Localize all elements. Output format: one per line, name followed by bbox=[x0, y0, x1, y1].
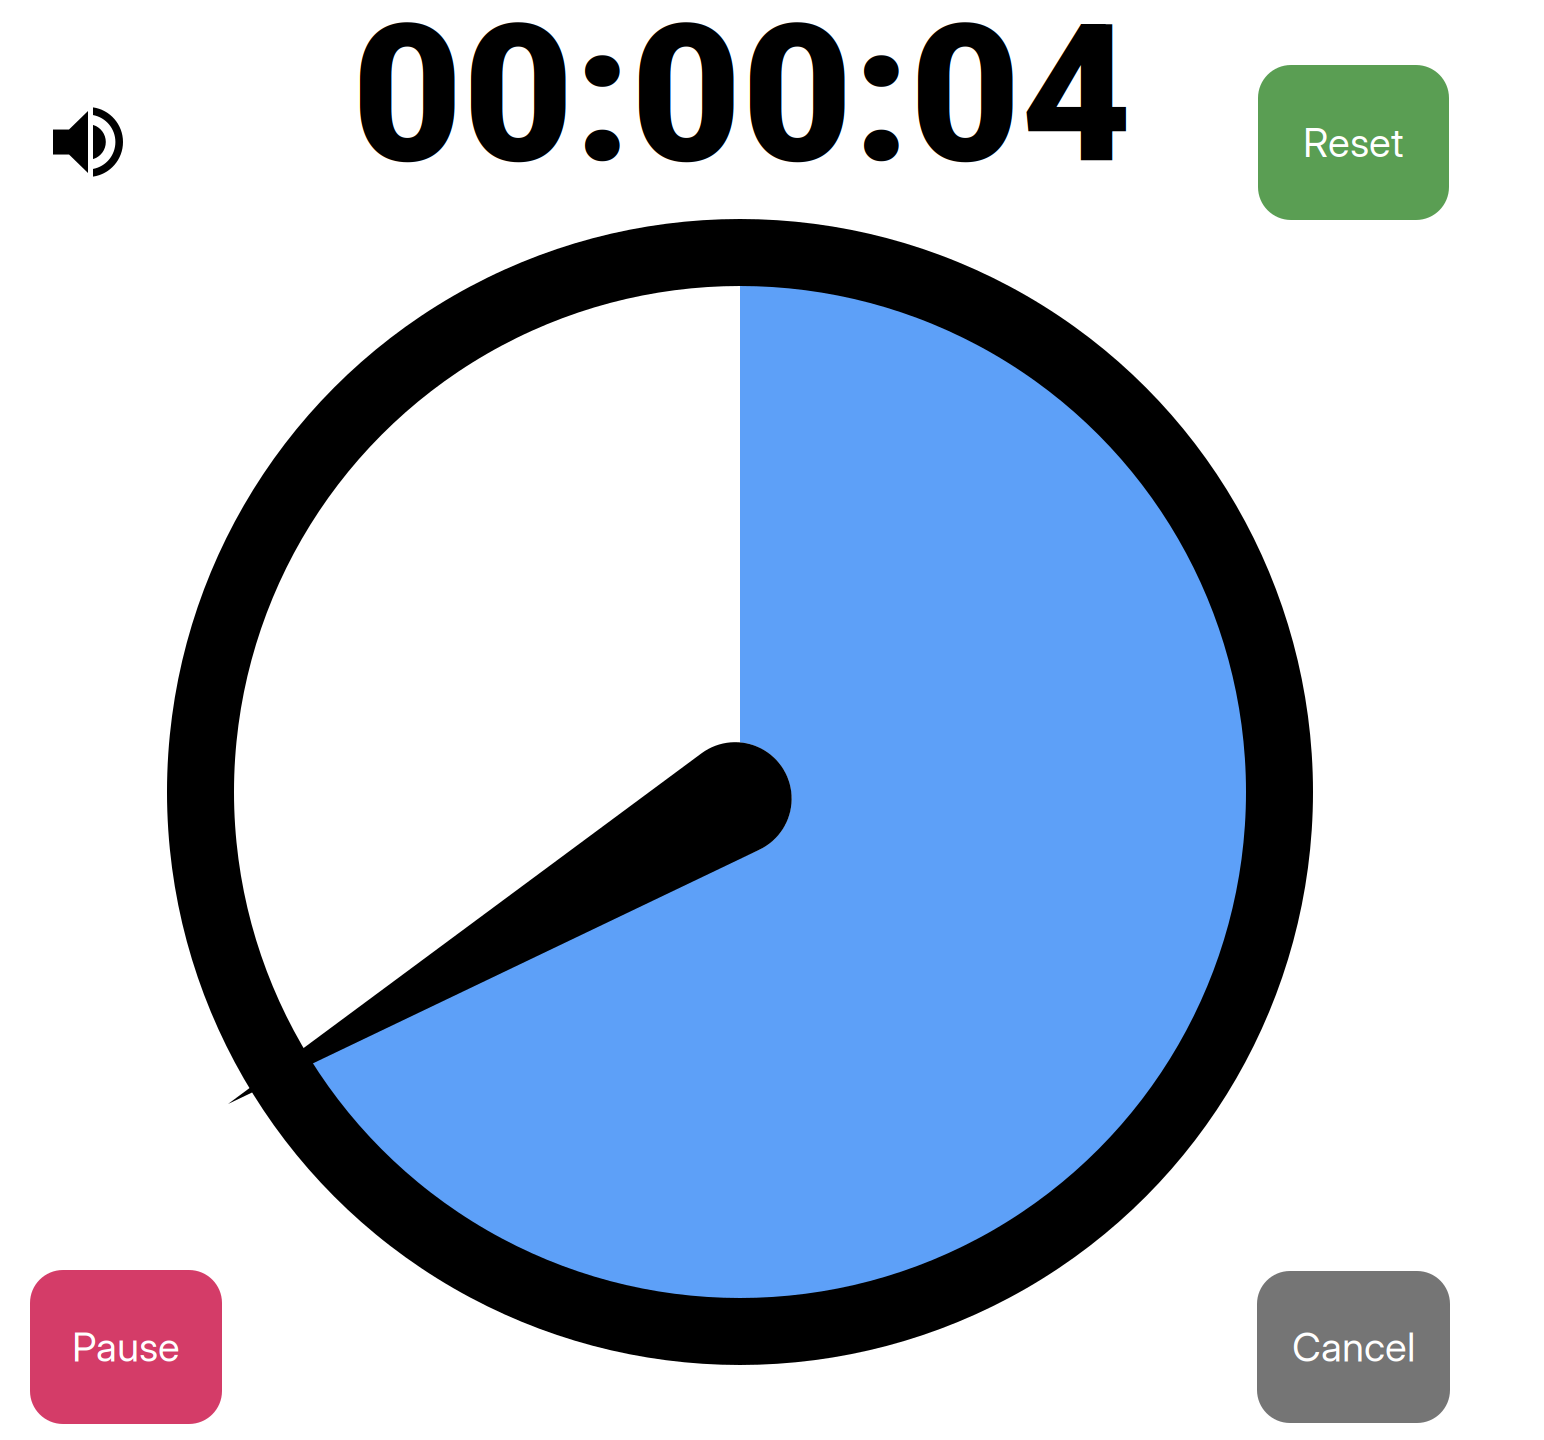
button[interactable]: Cancel bbox=[1257, 1271, 1450, 1423]
button[interactable]: Pause bbox=[30, 1270, 222, 1424]
staticText: 00:00:04 bbox=[352, 0, 1132, 207]
button[interactable]: Sound bbox=[53, 106, 123, 178]
staticText: Reset bbox=[1303, 118, 1404, 167]
button[interactable]: Reset bbox=[1258, 65, 1449, 220]
staticText: Cancel bbox=[1292, 1323, 1415, 1371]
staticText: Pause bbox=[72, 1323, 180, 1371]
